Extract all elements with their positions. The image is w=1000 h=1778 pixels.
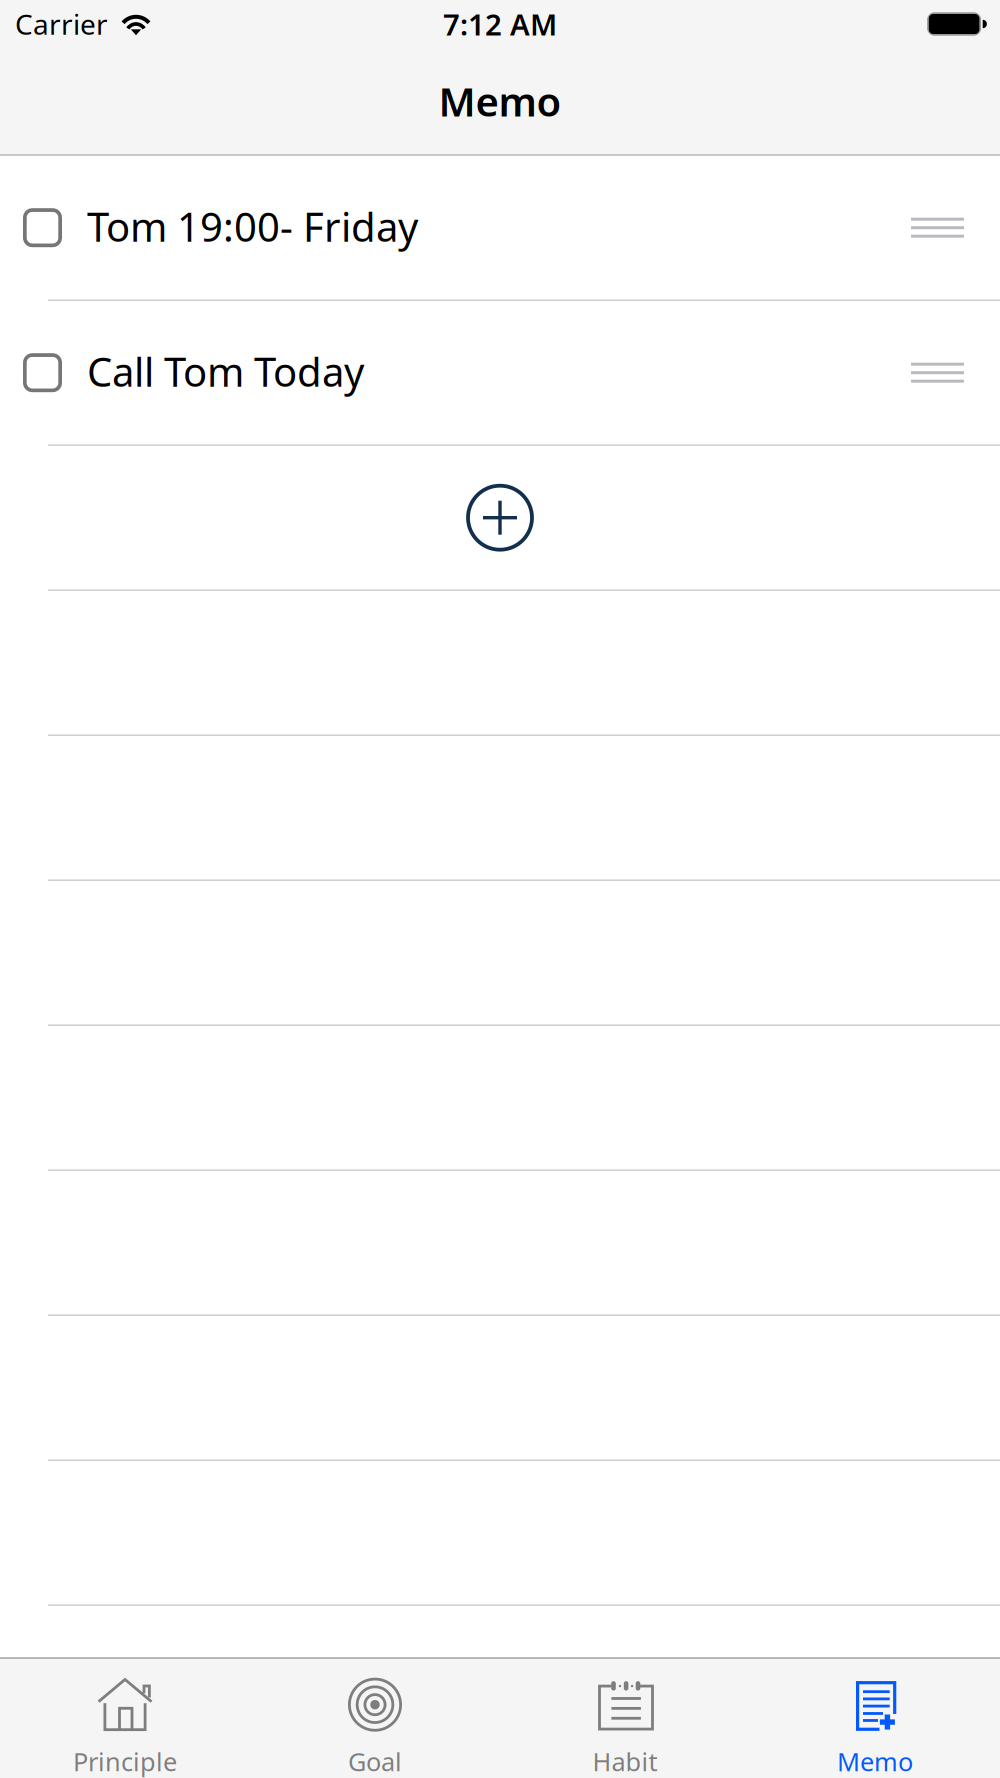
- staticText: Memo: [438, 74, 561, 127]
- staticText: Memo: [837, 1745, 913, 1778]
- button[interactable]: Add memo: [0, 446, 1000, 589]
- staticText: Principle: [73, 1745, 177, 1778]
- button[interactable]: Tom 19:00- Friday: [0, 156, 1000, 299]
- staticText: Carrier: [15, 5, 108, 43]
- staticText: 7:12 AM: [443, 4, 557, 43]
- staticText: Habit: [592, 1745, 657, 1778]
- staticText: Tom 19:00- Friday: [87, 200, 418, 253]
- staticText: Call Tom Today: [87, 345, 364, 398]
- button[interactable]: Call Tom Today: [0, 301, 1000, 444]
- button[interactable]: Habit: [500, 1658, 750, 1778]
- staticText: Goal: [348, 1745, 402, 1778]
- button[interactable]: Memo: [750, 1658, 1000, 1778]
- button[interactable]: Principle: [0, 1658, 250, 1778]
- button[interactable]: Goal: [250, 1658, 500, 1778]
